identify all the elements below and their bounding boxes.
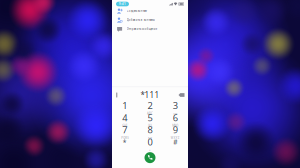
staticText: PQRS <box>121 136 128 140</box>
staticText: Добавить в контакты <box>127 18 155 22</box>
button[interactable]: 7 <box>112 125 137 138</box>
staticText: 6 <box>173 111 178 124</box>
staticText: 8 <box>147 123 152 136</box>
staticText: GHI <box>122 124 127 127</box>
button[interactable]: 4 <box>112 113 137 125</box>
staticText: JKL <box>148 124 152 127</box>
staticText: 3 <box>173 99 178 111</box>
button[interactable]: 5 <box>137 113 163 125</box>
button[interactable]: 0 <box>137 138 163 150</box>
button[interactable]: 8 <box>137 125 163 138</box>
button[interactable]: 6 <box>163 113 188 125</box>
button[interactable]: Добавить в контакты <box>112 15 188 24</box>
button[interactable]: * <box>112 138 137 150</box>
staticText: MNO <box>172 124 178 127</box>
staticText: 5 <box>147 111 152 124</box>
button[interactable]: Call <box>112 150 188 165</box>
button[interactable]: 9 <box>163 125 188 138</box>
staticText: 7 <box>122 123 127 136</box>
staticText: Отправить сообщение <box>127 27 157 31</box>
button[interactable]: # <box>163 138 188 150</box>
staticText: 0 <box>147 136 152 148</box>
staticText: 2 <box>147 99 152 111</box>
staticText: 4 <box>122 111 127 124</box>
staticText: WXYZ <box>171 136 180 140</box>
staticText: Создать контакт <box>127 9 147 13</box>
staticText: TUV <box>147 136 152 140</box>
button[interactable]: Delete <box>174 90 188 100</box>
staticText: 9:41 <box>119 2 126 6</box>
staticText: 9 <box>173 123 178 136</box>
staticText: ABC <box>147 112 153 115</box>
button[interactable]: 1 <box>112 101 137 113</box>
button[interactable]: Создать контакт <box>112 6 188 15</box>
button[interactable]: Отправить сообщение <box>112 24 188 33</box>
staticText: * <box>123 137 127 146</box>
staticText: # <box>173 137 177 146</box>
button[interactable]: 2 <box>137 101 163 113</box>
staticText: 1 <box>122 99 127 111</box>
staticText: *111 <box>140 89 159 100</box>
staticText: DEF <box>173 112 177 115</box>
staticText <box>124 112 125 115</box>
button[interactable]: 3 <box>163 101 188 113</box>
staticText: + <box>149 148 151 152</box>
